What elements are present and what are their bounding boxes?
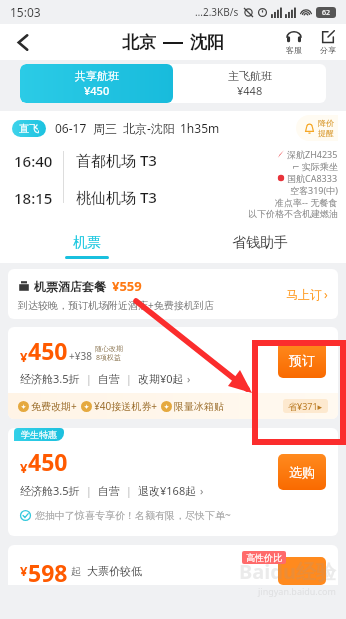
staticText: 分享 bbox=[320, 45, 336, 55]
staticText: | bbox=[80, 483, 98, 498]
staticText: Baidu经验 bbox=[239, 558, 336, 585]
staticText: +¥38 bbox=[69, 349, 92, 363]
staticText: 16:40 bbox=[14, 151, 53, 171]
staticText: 自营 bbox=[98, 484, 120, 498]
button[interactable]: 客服 bbox=[284, 30, 304, 55]
staticText: › bbox=[187, 371, 191, 386]
staticText: 国航CA8333 bbox=[287, 172, 338, 184]
button[interactable]: Back bbox=[6, 25, 40, 59]
button[interactable]: ¥ bbox=[8, 428, 338, 536]
staticText: 1h35m bbox=[180, 120, 220, 136]
staticText: 经济舱3.5折 bbox=[20, 483, 80, 498]
staticText: ¥ bbox=[20, 562, 28, 580]
staticText: 15:03 bbox=[10, 4, 41, 20]
button[interactable]: ¥ bbox=[8, 327, 338, 419]
staticText: 空客319(中) bbox=[290, 184, 338, 196]
staticText: 桃仙机场 T3 bbox=[76, 187, 157, 207]
staticText: 机票 bbox=[73, 234, 101, 252]
staticText: 62 bbox=[322, 8, 331, 18]
staticText: 选购 bbox=[289, 464, 315, 480]
staticText: 马上订 bbox=[286, 287, 322, 302]
button[interactable]: 机票 bbox=[0, 229, 173, 263]
staticText: 提醒 bbox=[318, 128, 334, 138]
staticText: 降价 bbox=[318, 118, 334, 128]
staticText: ¥450 bbox=[84, 83, 110, 98]
staticText: 深航ZH4235 bbox=[287, 148, 338, 160]
staticText: 您抽中了惊喜专享价！名额有限，尽快下单~ bbox=[35, 508, 231, 522]
staticText: 北京-沈阳 bbox=[123, 120, 175, 136]
staticText: 598 bbox=[28, 557, 68, 585]
staticText: | bbox=[120, 371, 138, 386]
staticText: 450 bbox=[28, 446, 68, 477]
staticText: 8项权益 bbox=[96, 353, 122, 363]
button[interactable]: 分享 bbox=[318, 30, 338, 55]
staticText: ¥ bbox=[20, 348, 28, 366]
staticText: ✦ bbox=[84, 403, 90, 410]
staticText: ¥40接送机券+ bbox=[94, 399, 157, 413]
staticText: 以下价格不含机建燃油 bbox=[248, 208, 338, 219]
staticText: 随心改期 bbox=[95, 344, 123, 353]
staticText: › bbox=[324, 286, 328, 302]
staticText: ✦ bbox=[21, 403, 27, 410]
staticText: | bbox=[120, 483, 138, 498]
staticText: 起 bbox=[71, 565, 81, 578]
staticText: 准点率-- 无餐食 bbox=[275, 196, 338, 208]
staticText: jingyan.baidu.com bbox=[258, 585, 336, 597]
staticText: 退改¥168起 bbox=[138, 483, 197, 498]
staticText: 沈阳 bbox=[190, 32, 224, 53]
staticText: 06-17 bbox=[55, 120, 87, 136]
staticText: 省¥371▸ bbox=[288, 400, 323, 412]
staticText: 机票酒店套餐 bbox=[34, 279, 106, 294]
staticText: › bbox=[200, 483, 204, 498]
staticText: 限量冰箱贴 bbox=[174, 400, 224, 413]
staticText: 大票价较低 bbox=[87, 564, 142, 578]
staticText: 450 bbox=[28, 335, 68, 366]
staticText: 客服 bbox=[286, 45, 302, 55]
staticText: 首都机场 T3 bbox=[76, 150, 157, 170]
staticText: …2.3KB/s bbox=[195, 5, 239, 19]
staticText: 北京 bbox=[122, 32, 156, 53]
staticText: 主飞航班 bbox=[228, 69, 272, 83]
staticText: ¥ bbox=[20, 459, 28, 477]
button[interactable]: 预订 bbox=[278, 342, 326, 378]
staticText: 自营 bbox=[98, 372, 120, 386]
staticText: | bbox=[80, 371, 98, 386]
staticText: 18:15 bbox=[14, 188, 53, 208]
staticText: 学生特惠 bbox=[21, 429, 57, 440]
button[interactable]: 降价 bbox=[303, 118, 334, 138]
staticText: ✦ bbox=[164, 403, 170, 410]
staticText: 周三 bbox=[93, 121, 117, 136]
staticText: ¥559 bbox=[112, 277, 142, 295]
staticText: 预订 bbox=[289, 352, 315, 368]
staticText: 经济舱3.5折 bbox=[20, 371, 80, 386]
button[interactable]: 选购 bbox=[278, 454, 326, 490]
staticText: 高性价比 bbox=[246, 552, 282, 563]
staticText: 免费改期+ bbox=[31, 399, 77, 413]
button[interactable]: 省钱助手 bbox=[173, 229, 346, 263]
staticText: 改期¥0起 bbox=[138, 371, 184, 386]
staticText: 直飞 bbox=[19, 122, 39, 135]
staticText: 省钱助手 bbox=[232, 234, 288, 252]
button[interactable]: 主飞航班 bbox=[173, 64, 326, 103]
button[interactable]: 机票酒店套餐 bbox=[8, 269, 338, 319]
button[interactable]: 共享航班 bbox=[20, 64, 173, 103]
staticText: 到达较晚，预订机场附近酒店+免费接机到店 bbox=[18, 298, 214, 312]
staticText: ¥448 bbox=[237, 83, 263, 98]
staticText: 共享航班 bbox=[75, 69, 119, 83]
staticText: ⌐ 实际乘坐 bbox=[292, 160, 338, 172]
